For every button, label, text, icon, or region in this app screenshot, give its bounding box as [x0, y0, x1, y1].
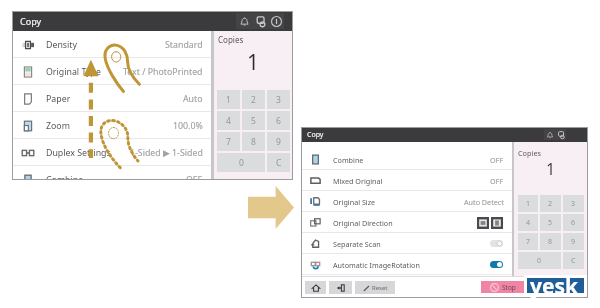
staticText: 7	[526, 237, 531, 247]
button[interactable]: 1	[518, 195, 538, 212]
staticText: Standard	[165, 39, 203, 51]
staticText: Copy	[307, 130, 324, 140]
staticText: 0	[537, 256, 542, 266]
staticText: Original Size	[333, 197, 376, 207]
staticText: Separate Scan	[333, 239, 381, 249]
staticText: 8	[251, 136, 256, 148]
staticText: 3	[571, 199, 576, 209]
button[interactable]: Mixed Original	[301, 170, 512, 191]
button[interactable]: Stop	[481, 281, 524, 293]
staticText: Combine	[46, 174, 84, 180]
staticText: 5	[548, 218, 553, 228]
button[interactable]: 8	[540, 233, 561, 250]
button[interactable]: 4	[217, 111, 240, 130]
staticText: Reset	[372, 284, 388, 292]
staticText: yesk	[530, 272, 579, 301]
staticText: Text / PhotoPrinted	[123, 66, 203, 78]
button[interactable]: 3	[563, 195, 584, 212]
button[interactable]: Density	[12, 31, 211, 58]
staticText: Copy	[20, 15, 42, 27]
staticText: 1	[247, 48, 260, 71]
staticText: OFF	[490, 176, 504, 186]
staticText: 0	[239, 157, 244, 169]
staticText: C	[276, 157, 282, 169]
button[interactable]: 2	[540, 195, 561, 212]
staticText: 4	[526, 218, 531, 228]
button[interactable]: Notifications	[236, 13, 252, 29]
button[interactable]: Information	[268, 13, 284, 29]
button[interactable]: C	[563, 252, 584, 269]
button[interactable]: Separate Scan	[301, 233, 512, 254]
button[interactable]: 8	[242, 132, 265, 151]
staticText: 100.0%	[173, 120, 203, 132]
button[interactable]: 9	[563, 233, 584, 250]
staticText: 2	[548, 199, 553, 209]
staticText: 1-Sided ▶ 1-Sided	[130, 147, 203, 159]
staticText: 9	[276, 136, 281, 148]
button[interactable]: 7	[217, 132, 240, 151]
button[interactable]: Original Direction	[301, 212, 512, 233]
button[interactable]: Notifications	[544, 129, 555, 140]
staticText: 5	[251, 115, 256, 127]
button[interactable]: Home	[305, 281, 326, 294]
button[interactable]: 0	[518, 252, 561, 269]
staticText: Auto Detect	[464, 197, 504, 207]
staticText: 4	[226, 115, 231, 127]
staticText: Paper	[46, 93, 71, 105]
staticText: Mixed Original	[333, 176, 383, 186]
button[interactable]: 4	[518, 214, 538, 231]
staticText: Original Type	[46, 66, 101, 78]
staticText: 6	[276, 115, 281, 127]
button[interactable]: C	[267, 153, 290, 172]
staticText: 8	[548, 237, 553, 247]
staticText: 1	[226, 94, 231, 106]
staticText: Original Direction	[333, 218, 393, 228]
button[interactable]: Zoom	[12, 112, 211, 139]
staticText: Density	[46, 39, 77, 51]
button[interactable]: Reset	[355, 281, 395, 294]
button[interactable]: Duplex Settings	[12, 139, 211, 166]
button[interactable]: Account	[252, 13, 268, 29]
staticText: Duplex Settings	[46, 147, 111, 159]
staticText: Copies	[218, 34, 244, 45]
staticText: Stop	[502, 283, 516, 292]
button[interactable]: 9	[267, 132, 290, 151]
button[interactable]: Combine	[12, 166, 211, 180]
button[interactable]: 6	[267, 111, 290, 130]
staticText: C	[571, 256, 576, 266]
staticText: 3	[276, 94, 281, 106]
button[interactable]: 7	[518, 233, 538, 250]
button[interactable]: 1	[217, 90, 240, 109]
button[interactable]: Logout	[329, 281, 352, 294]
staticText: 2	[251, 94, 256, 106]
staticText: OFF	[490, 155, 504, 165]
button[interactable]: Original Size	[301, 191, 512, 212]
button[interactable]: Account	[555, 129, 566, 140]
staticText: 1	[526, 199, 531, 209]
staticText: OFF	[186, 174, 203, 180]
staticText: 6	[571, 218, 576, 228]
button[interactable]: 5	[242, 111, 265, 130]
staticText: Copies	[518, 148, 542, 158]
staticText: Zoom	[46, 120, 70, 132]
button[interactable]: 2	[242, 90, 265, 109]
staticText: Auto	[183, 93, 203, 105]
button[interactable]: Original Type	[12, 58, 211, 85]
staticText: Combine	[333, 155, 364, 165]
staticText: 7	[226, 136, 231, 148]
button[interactable]: Combine	[301, 149, 512, 170]
button[interactable]: 3	[267, 90, 290, 109]
button[interactable]: 0	[217, 153, 265, 172]
button[interactable]: Paper	[12, 85, 211, 112]
button[interactable]: Automatic ImageRotation	[301, 254, 512, 275]
staticText: Automatic ImageRotation	[333, 260, 420, 270]
staticText: 1	[546, 158, 556, 180]
staticText: 9	[571, 237, 576, 247]
button[interactable]: 5	[540, 214, 561, 231]
button[interactable]: 6	[563, 214, 584, 231]
